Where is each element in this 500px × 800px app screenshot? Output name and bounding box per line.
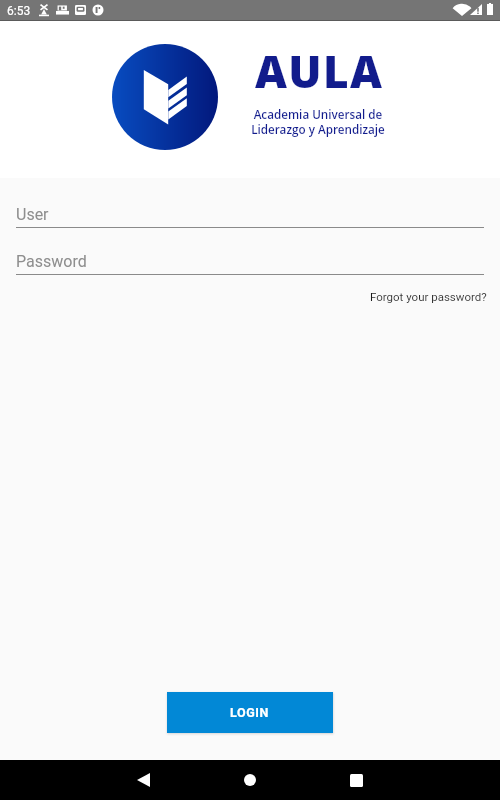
button[interactable]: LOGIN [167,692,333,733]
button[interactable]: Password [16,252,484,275]
button[interactable]: User [16,205,484,228]
staticText: Password [16,252,87,271]
button[interactable]: Forgot your password? [368,288,489,305]
staticText: 6:53 [7,4,31,18]
button[interactable]: Home [230,760,270,800]
staticText: AULA [255,41,384,101]
staticText: LOGIN [230,705,270,720]
staticText: User [16,205,49,224]
button[interactable]: Back [123,760,163,800]
button[interactable]: Recent apps [336,760,376,800]
staticText: Forgot your password? [370,290,487,303]
staticText: Academia Universal de Liderazgo y Aprend… [249,106,387,138]
